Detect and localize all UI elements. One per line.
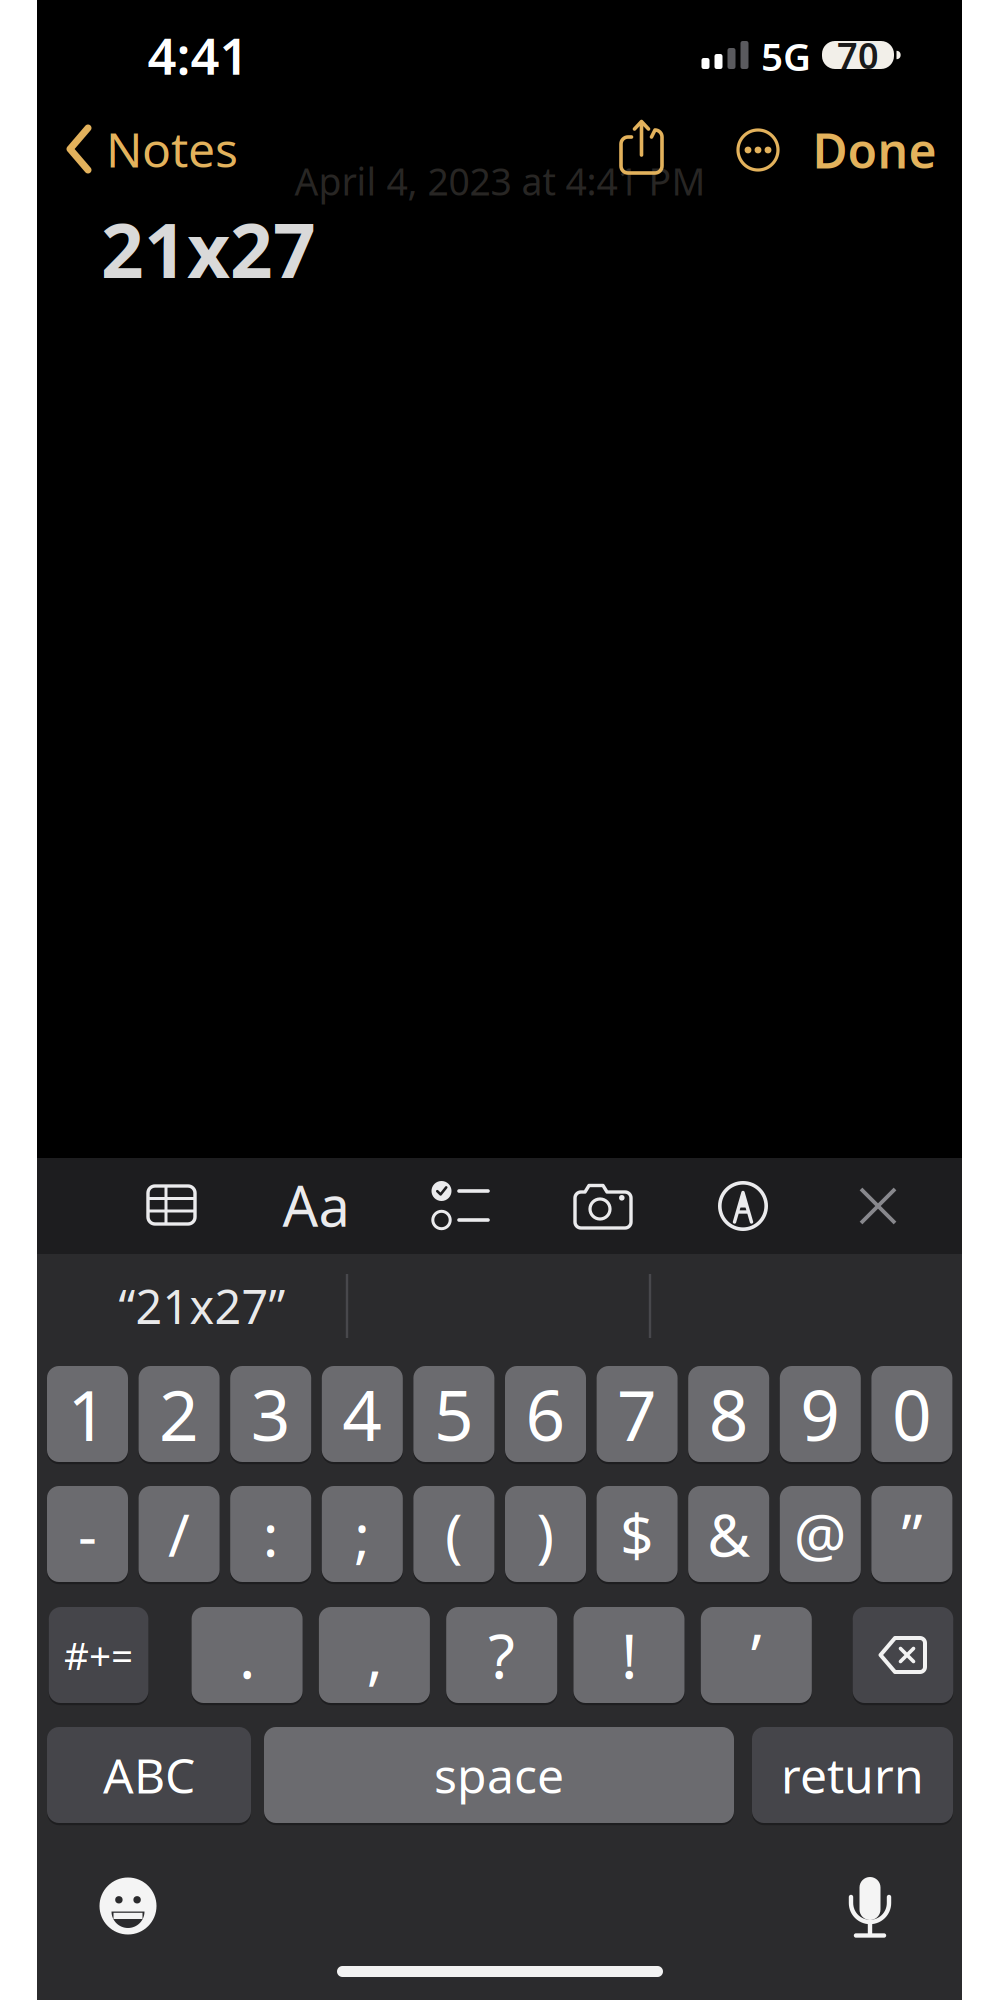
staticText: 8 (709, 1368, 749, 1460)
button[interactable]: Emoji (92, 1870, 164, 1942)
staticText: $ (620, 1495, 654, 1573)
button[interactable]: ! (573, 1607, 684, 1703)
button[interactable]: / (139, 1486, 220, 1582)
button[interactable]: $ (597, 1486, 678, 1582)
staticText: ) (536, 1495, 554, 1573)
staticText: 0 (892, 1368, 932, 1460)
staticText: ’ (751, 1614, 762, 1696)
button[interactable]: @ (780, 1486, 861, 1582)
staticText: ! (621, 1614, 637, 1696)
staticText: April 4, 2023 at 4:41 PM (294, 156, 705, 206)
button[interactable]: - (47, 1486, 128, 1582)
button[interactable]: Delete (853, 1607, 953, 1703)
staticText: space (434, 1743, 564, 1807)
button[interactable]: 4 (322, 1366, 403, 1462)
staticText: Done (812, 118, 936, 182)
staticText: 3 (251, 1368, 291, 1460)
button[interactable]: & (688, 1486, 769, 1582)
staticText: #+= (64, 1629, 133, 1681)
button[interactable]: Done (812, 120, 936, 180)
button[interactable]: 6 (505, 1366, 586, 1462)
button[interactable]: 9 (780, 1366, 861, 1462)
button[interactable]: 0 (871, 1366, 952, 1462)
button[interactable]: ; (322, 1486, 403, 1582)
button[interactable]: Checklist (422, 1169, 498, 1241)
button[interactable]: ” (871, 1486, 952, 1582)
button[interactable]: Formatting (276, 1169, 356, 1241)
staticText: 9 (800, 1368, 840, 1460)
button[interactable]: ABC (47, 1727, 251, 1823)
staticText: & (707, 1495, 750, 1573)
staticText: 6 (525, 1368, 565, 1460)
button[interactable]: 5 (413, 1366, 494, 1462)
staticText: : (263, 1495, 279, 1573)
button[interactable]: ? (446, 1607, 557, 1703)
staticText: 2 (159, 1368, 199, 1460)
staticText: ( (445, 1495, 463, 1573)
staticText: Aa (282, 1168, 349, 1242)
button[interactable]: ( (413, 1486, 494, 1582)
staticText: return (781, 1743, 924, 1807)
button[interactable]: #+= (49, 1607, 148, 1703)
button[interactable]: : (230, 1486, 311, 1582)
button[interactable]: , (319, 1607, 430, 1703)
staticText: @ (794, 1495, 847, 1573)
button[interactable]: 3 (230, 1366, 311, 1462)
button[interactable]: More (730, 122, 786, 178)
button[interactable]: space (264, 1727, 734, 1823)
staticText: ; (354, 1495, 370, 1573)
staticText: 4 (342, 1368, 382, 1460)
staticText: . (239, 1614, 255, 1696)
staticText: 5G (761, 30, 811, 82)
staticText: ? (488, 1614, 515, 1696)
button[interactable]: 2 (139, 1366, 220, 1462)
button[interactable]: Dismiss keyboard (846, 1174, 910, 1238)
button[interactable]: return (752, 1727, 953, 1823)
staticText: 1 (67, 1368, 107, 1460)
button[interactable]: ) (505, 1486, 586, 1582)
staticText: “21x27” (118, 1275, 285, 1337)
button[interactable]: “21x27” (57, 1262, 347, 1350)
button[interactable]: Back (66, 119, 306, 179)
button[interactable]: Share (611, 115, 671, 179)
staticText: 21x27 (101, 199, 316, 299)
staticText: , (366, 1614, 382, 1696)
staticText: 7 (617, 1368, 657, 1460)
button[interactable]: 1 (47, 1366, 128, 1462)
staticText: ABC (103, 1743, 195, 1807)
staticText: ” (901, 1495, 922, 1573)
button[interactable]: . (192, 1607, 303, 1703)
button[interactable]: 7 (597, 1366, 678, 1462)
staticText: - (78, 1495, 97, 1573)
button[interactable]: Insert table (135, 1169, 207, 1241)
staticText: / (168, 1495, 190, 1573)
staticText: Notes (106, 117, 238, 181)
button[interactable]: Dictate (834, 1872, 906, 1944)
staticText: 4:41 (147, 21, 248, 89)
button[interactable]: ’ (701, 1607, 812, 1703)
button[interactable]: Insert photo (564, 1171, 642, 1243)
button[interactable]: 8 (688, 1366, 769, 1462)
button[interactable]: Markup (707, 1170, 779, 1242)
staticText: 5 (434, 1368, 474, 1460)
staticText: 70 (837, 31, 879, 79)
